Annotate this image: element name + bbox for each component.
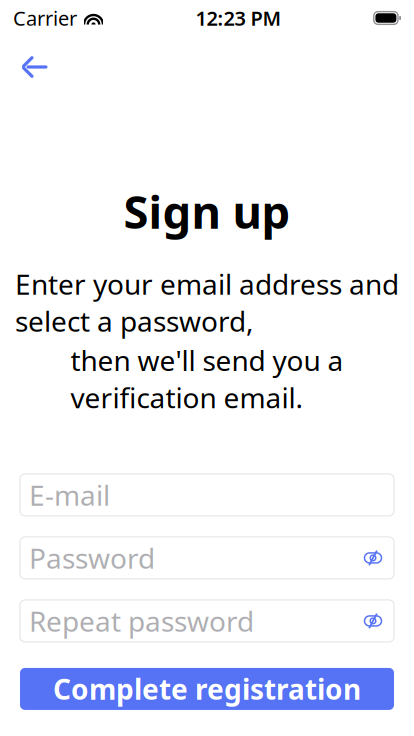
staticText: Sign up <box>123 181 290 241</box>
staticText: Carrier <box>13 5 77 31</box>
button[interactable]: Complete registration <box>20 668 394 710</box>
button[interactable]: Show Password <box>356 541 390 575</box>
staticText: Repeat password <box>29 602 254 639</box>
staticText: Enter your email address and select a pa… <box>15 265 399 340</box>
staticText: 12:23 PM <box>195 5 281 31</box>
staticText: then we'll send you a verification email… <box>70 342 343 416</box>
staticText: Complete registration <box>53 670 361 707</box>
staticText: E-mail <box>29 476 110 513</box>
staticText: Password <box>29 539 155 576</box>
button[interactable]: Show Repeat password <box>356 604 390 638</box>
button[interactable]: Back <box>8 41 60 93</box>
